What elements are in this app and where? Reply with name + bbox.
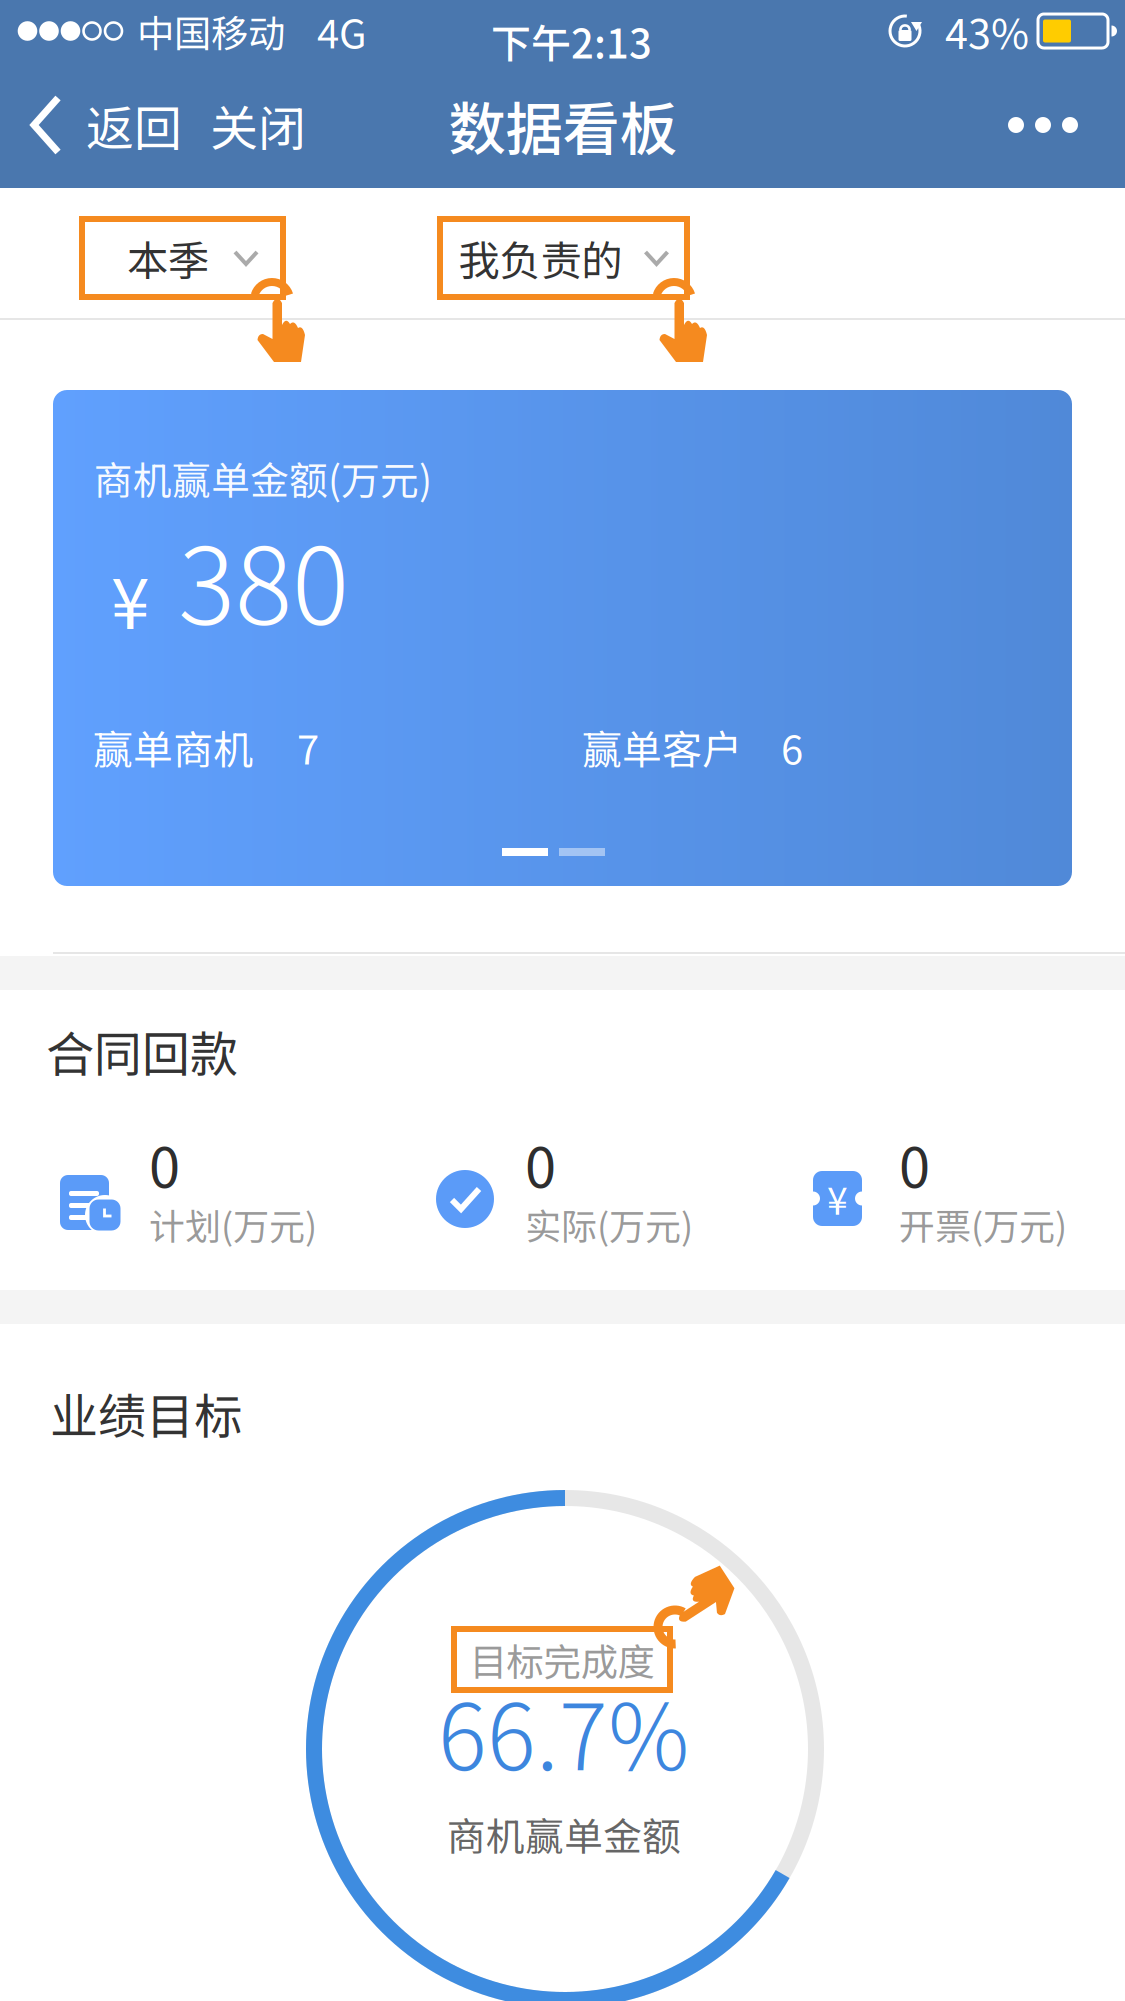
staticText: 0 bbox=[899, 1123, 930, 1204]
staticText: 0 bbox=[525, 1123, 556, 1204]
staticText: 本季 bbox=[127, 228, 209, 288]
staticText: 返回 bbox=[86, 90, 182, 160]
staticText: 中国移动 bbox=[137, 4, 285, 58]
staticText: 业绩目标 bbox=[50, 1378, 242, 1447]
staticText: 6 bbox=[781, 718, 803, 776]
staticText: 4G bbox=[317, 2, 367, 60]
staticText: 商机赢单金额(万元) bbox=[94, 450, 432, 506]
button[interactable]: 返回 bbox=[0, 62, 191, 188]
staticText: 赢单商机 bbox=[93, 718, 253, 776]
button[interactable]: 本季 bbox=[79, 216, 286, 300]
button[interactable]: 关闭 bbox=[191, 62, 325, 188]
staticText: 计划(万元) bbox=[149, 1198, 317, 1250]
staticText: 关闭 bbox=[210, 90, 306, 160]
staticText: 7 bbox=[297, 718, 319, 776]
button[interactable]: More options bbox=[972, 62, 1125, 188]
staticText: ¥ bbox=[111, 548, 149, 648]
staticText: 66.7% bbox=[438, 1665, 689, 1796]
button[interactable]: 我负责的 bbox=[437, 216, 690, 300]
staticText: 下午2:13 bbox=[491, 12, 652, 70]
staticText: 380 bbox=[178, 501, 349, 655]
staticText: 目标完成度 bbox=[469, 1632, 654, 1687]
staticText: 实际(万元) bbox=[525, 1198, 693, 1250]
staticText: 商机赢单金额 bbox=[447, 1806, 681, 1862]
staticText: ¥ bbox=[827, 1171, 848, 1226]
staticText: 0 bbox=[149, 1123, 180, 1204]
staticText: 43% bbox=[945, 1, 1029, 61]
staticText: 开票(万元) bbox=[899, 1198, 1067, 1250]
staticText: 赢单客户 bbox=[582, 718, 742, 776]
staticText: 合同回款 bbox=[46, 1016, 238, 1085]
staticText: 数据看板 bbox=[448, 83, 676, 166]
staticText: 我负责的 bbox=[458, 228, 622, 288]
